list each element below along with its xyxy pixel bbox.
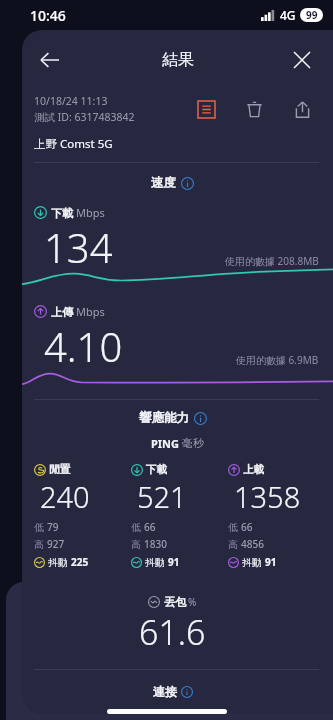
staticText: 1830 <box>144 537 167 551</box>
staticText: 99 <box>306 8 318 22</box>
staticText: 高 <box>34 537 47 551</box>
staticText: 66 <box>241 520 253 534</box>
staticText: 毫秒 <box>182 436 204 450</box>
staticText: PING <box>151 436 182 451</box>
staticText: 下載 <box>51 206 73 220</box>
staticText: 抖動 <box>242 555 265 569</box>
staticText: 低 <box>34 520 47 534</box>
staticText: 低 <box>131 520 144 534</box>
button[interactable]: Info <box>181 177 194 190</box>
staticText: Comst 5G <box>60 136 113 152</box>
staticText: 高 <box>131 537 144 551</box>
staticText: 下載 <box>146 463 167 476</box>
button[interactable]: Back <box>32 42 68 78</box>
staticText: 上傳 <box>51 305 73 319</box>
staticText: 10/18/24 11:13 <box>34 94 108 108</box>
staticText: 61.6 <box>139 609 206 655</box>
button[interactable]: Delete <box>237 92 271 126</box>
button[interactable]: Share <box>285 92 319 126</box>
staticText: 低 <box>228 520 241 534</box>
staticText: 240 <box>40 477 90 516</box>
staticText: 1358 <box>234 477 301 516</box>
staticText: 使用的數據 208.8MB <box>225 254 319 268</box>
staticText: 91 <box>265 555 277 569</box>
button[interactable]: Info <box>194 412 207 425</box>
staticText: 抖動 <box>145 555 168 569</box>
staticText: 134 <box>44 220 113 268</box>
staticText: 抖動 <box>48 555 71 569</box>
staticText: 閒置 <box>49 463 70 476</box>
staticText: 4856 <box>241 537 264 551</box>
staticText: Mbps <box>76 205 105 220</box>
staticText: 10:46 <box>30 6 66 25</box>
staticText: 225 <box>71 555 89 569</box>
staticText: 521 <box>137 477 187 516</box>
staticText: 上野 <box>34 136 60 152</box>
staticText: 測試 ID: 6317483842 <box>34 110 135 124</box>
staticText: 速度 <box>151 175 176 191</box>
staticText: 丟包 <box>164 595 186 609</box>
staticText: 4G <box>280 7 296 23</box>
button[interactable]: Details <box>189 92 223 126</box>
staticText: 927 <box>47 537 65 551</box>
staticText: 4.10 <box>44 319 123 367</box>
staticText: 結果 <box>162 50 194 70</box>
staticText: 連接 <box>153 684 177 699</box>
staticText: % <box>188 595 197 609</box>
staticText: 使用的數據 6.9MB <box>236 353 319 367</box>
staticText: Mbps <box>76 304 105 319</box>
staticText: 79 <box>47 520 59 534</box>
staticText: 上載 <box>243 463 264 476</box>
staticText: 91 <box>168 555 180 569</box>
button[interactable]: Close <box>285 43 319 77</box>
staticText: 66 <box>144 520 156 534</box>
staticText: 高 <box>228 537 241 551</box>
staticText: 響應能力 <box>139 410 189 426</box>
